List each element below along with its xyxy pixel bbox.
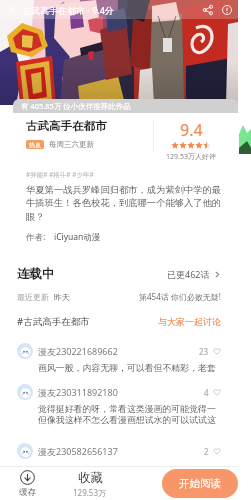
staticText: 缓存 xyxy=(19,487,36,498)
button[interactable]: 漫友230221689662 xyxy=(0,340,238,381)
button[interactable]: 漫友230311892180 xyxy=(0,381,238,440)
staticText: 与大家一起讨论 xyxy=(158,316,221,327)
button[interactable]: 缓存 xyxy=(8,470,46,498)
staticText: 最近更新 xyxy=(17,292,49,302)
staticText: 129.53万 xyxy=(73,487,107,498)
staticText: 画风一般，内容无聊，可以看但不精彩，老套路… xyxy=(38,362,221,373)
staticText: 华夏第一战兵罗峰回归都市，成为紫剑中学的最牛插班生！各色校花，到底哪一个能够入了… xyxy=(26,184,223,223)
button[interactable]: 开始阅读 xyxy=(162,469,238,498)
staticText: 9.4 xyxy=(180,119,203,141)
staticText: 23 xyxy=(199,346,209,357)
staticText: 129.53万人好评 xyxy=(166,152,216,162)
staticText: #古武高手在都市 xyxy=(17,315,90,328)
staticText: 漫友230582656137 xyxy=(38,445,118,457)
staticText: #异能# #格斗# #少年# xyxy=(26,170,94,179)
button[interactable]: 连载中 xyxy=(17,263,221,285)
staticText: 4 xyxy=(204,387,209,398)
button[interactable]: More information xyxy=(219,2,234,17)
staticText: 漫友230311892180 xyxy=(38,386,118,398)
staticText: 收藏 xyxy=(78,470,103,486)
staticText: 每周三六更新 xyxy=(49,140,94,149)
staticText: 古武高手在都市 xyxy=(26,119,107,133)
button[interactable]: #古武高手在都市 xyxy=(17,315,221,328)
staticText: 连载中 xyxy=(17,266,55,282)
staticText: 第454话 你们必败无疑! xyxy=(139,291,221,302)
staticText: 觉得挺好看的呀，常看这类漫画的可能觉得一般， xyxy=(38,403,221,414)
staticText: 有 405.85万 位小伙伴推荐此作品 xyxy=(21,101,131,111)
staticText: 已更462话 xyxy=(167,268,210,280)
staticText: 漫友230221689662 xyxy=(38,345,118,357)
staticText: 昨天 xyxy=(54,292,70,302)
staticText: 古武高手在都市 · 9.4分 xyxy=(22,4,114,16)
staticText: 开始阅读 xyxy=(179,477,221,490)
staticText: 热血 xyxy=(29,141,41,149)
staticText: 但像我这样不怎么看漫画想试水的可以试试这篇 xyxy=(38,414,221,425)
staticText: 作者: xyxy=(26,231,46,243)
button[interactable]: Share xyxy=(200,2,215,17)
button[interactable]: 收藏 xyxy=(73,470,107,498)
button[interactable]: 漫友230582656137 xyxy=(0,440,238,466)
staticText: 2 xyxy=(204,446,209,457)
staticText: iCiyuan动漫 xyxy=(54,231,101,243)
